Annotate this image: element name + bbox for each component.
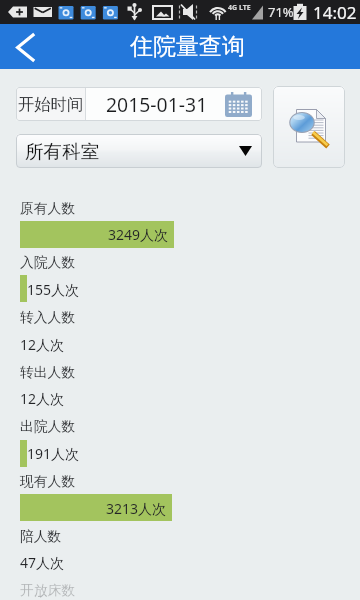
staticText: 开放床数 [20,582,76,599]
staticText: 3249人次 [108,225,169,244]
staticText: 47人次 [20,553,65,572]
staticText: 12人次 [20,389,65,408]
button[interactable] [0,360,360,414]
button[interactable] [0,524,360,578]
staticText: 所有科室 [25,140,100,163]
staticText: 2015-01-31 [106,91,208,117]
staticText: 191人次 [27,444,80,463]
staticText: 入院人数 [20,254,76,271]
staticText: 转入人数 [20,309,76,326]
staticText: 4G LTE [228,3,251,13]
button[interactable] [0,415,360,469]
staticText: 71% [268,3,294,21]
staticText: 155人次 [27,280,80,299]
button[interactable]: 开始时间 [16,87,262,121]
staticText: 12人次 [20,335,65,354]
staticText: 住院量查询 [130,32,245,61]
button[interactable]: Back [0,24,50,69]
button[interactable] [0,579,360,600]
button[interactable] [0,196,360,250]
staticText: 现有人数 [20,473,76,490]
button[interactable]: 所有科室 [16,134,262,168]
staticText: 14:02 [313,1,357,24]
staticText: 转出人数 [20,364,76,381]
button[interactable] [0,251,360,305]
button[interactable]: Search [273,86,345,168]
staticText: 开始时间 [18,94,84,115]
staticText: 原有人数 [20,200,76,217]
staticText: 3213人次 [106,499,167,518]
staticText: 出院人数 [20,418,76,435]
button[interactable] [0,470,360,524]
staticText: 陪人数 [20,528,62,545]
button[interactable] [0,305,360,359]
